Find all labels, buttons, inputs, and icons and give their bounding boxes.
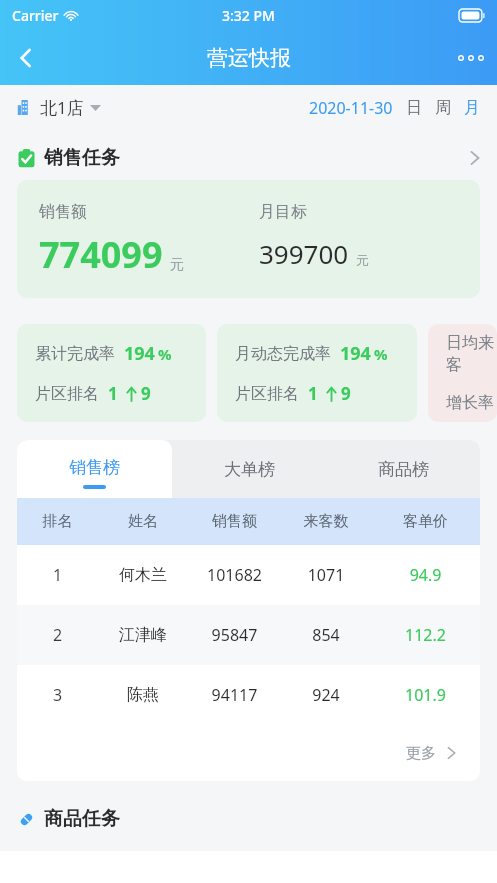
button[interactable]: 日 [406, 98, 422, 118]
staticText: 销售任务 [44, 146, 120, 170]
staticText: 924 [281, 684, 371, 706]
staticText: 更多 [406, 744, 436, 763]
staticText: 1 [108, 382, 118, 405]
staticText: 112.2 [371, 624, 480, 646]
button[interactable]: More options [445, 32, 497, 84]
staticText: 姓名 [98, 512, 188, 531]
staticText: 元 [356, 252, 369, 268]
staticText: 元 [170, 256, 184, 274]
staticText: % [158, 344, 172, 364]
button[interactable]: 2020-11-30 [309, 97, 393, 119]
staticText: 来客数 [281, 512, 371, 531]
staticText: 2 [17, 624, 98, 646]
button[interactable]: 商品榜 [326, 440, 480, 498]
staticText: 94117 [188, 684, 281, 706]
staticText: 94.9 [371, 564, 480, 586]
staticText: 101682 [188, 564, 281, 586]
staticText: 排名 [17, 512, 98, 531]
staticText: 1 [17, 564, 98, 586]
button[interactable]: 月动态完成率 [217, 324, 417, 422]
staticText: 月目标 [259, 202, 307, 222]
button[interactable]: 北1店 [17, 96, 101, 119]
button[interactable]: 更多 [17, 725, 480, 781]
staticText: 销售额 [39, 202, 87, 222]
staticText: 销售额 [188, 512, 281, 531]
button[interactable]: 1 [17, 545, 480, 605]
staticText: 854 [281, 624, 371, 646]
staticText: 客单价 [371, 512, 480, 531]
button[interactable]: 3 [17, 665, 480, 725]
staticText: 3 [17, 684, 98, 706]
button[interactable]: 日均来客 [428, 324, 497, 422]
staticText: 9 [141, 382, 151, 405]
staticText: 774099 [39, 230, 163, 279]
staticText: 101.9 [371, 684, 480, 706]
staticText: 销售榜 [69, 457, 120, 478]
staticText: 商品榜 [378, 459, 429, 480]
staticText: 江津峰 [98, 625, 188, 645]
staticText: 月动态完成率 [235, 344, 331, 364]
staticText: % [374, 344, 388, 364]
staticText: 3:32 PM [222, 6, 275, 25]
staticText: 日均来客 [446, 333, 497, 375]
button[interactable]: 周 [435, 98, 451, 118]
staticText: 商品任务 [44, 807, 120, 831]
staticText: 1 [308, 382, 318, 405]
staticText: 片区排名 [35, 384, 99, 404]
staticText: 片区排名 [235, 384, 299, 404]
button[interactable]: 销售榜 [17, 440, 172, 498]
button[interactable]: Back [0, 32, 52, 84]
button[interactable]: 销售额 [17, 180, 480, 298]
staticText: 何木兰 [98, 565, 188, 585]
staticText: 营运快报 [207, 45, 291, 71]
button[interactable]: 商品任务 [0, 797, 497, 841]
staticText: 陈燕 [98, 685, 188, 705]
staticText: 9 [341, 382, 351, 405]
staticText: 1071 [281, 564, 371, 586]
button[interactable]: 2 [17, 605, 480, 665]
staticText: Carrier [12, 6, 59, 25]
button[interactable]: 累计完成率 [17, 324, 206, 422]
button[interactable]: 销售任务 [0, 136, 497, 180]
staticText: 194 [124, 341, 155, 366]
staticText: 194 [340, 341, 371, 366]
staticText: 增长率 [446, 393, 494, 413]
button[interactable]: 月 [464, 98, 480, 118]
button[interactable]: 大单榜 [172, 440, 326, 498]
staticText: 累计完成率 [35, 344, 115, 364]
staticText: 大单榜 [224, 459, 275, 480]
staticText: 95847 [188, 624, 281, 646]
staticText: 北1店 [40, 96, 84, 119]
staticText: 399700 [259, 236, 349, 271]
